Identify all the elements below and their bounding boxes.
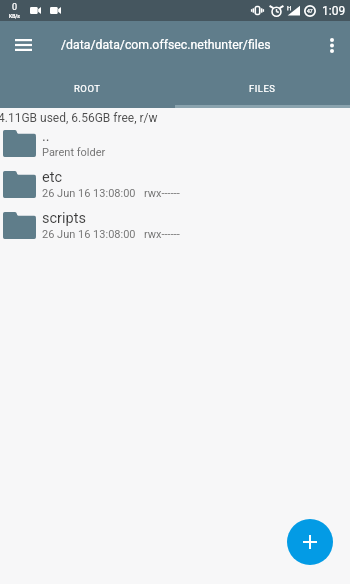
button[interactable]: Open navigation drawer: [0, 21, 47, 68]
staticText: 1:09: [322, 4, 346, 18]
button[interactable]: ROOT: [0, 68, 175, 108]
button[interactable]: etc: [0, 164, 350, 205]
button[interactable]: FILES: [175, 68, 350, 108]
staticText: H: [287, 4, 292, 11]
staticText: 26 Jun 16 13:08:00: [42, 228, 136, 241]
staticText: etc: [42, 169, 63, 186]
button[interactable]: Add: [287, 519, 333, 565]
staticText: scripts: [42, 210, 86, 227]
staticText: 26 Jun 16 13:08:00: [42, 187, 136, 200]
button[interactable]: ..: [0, 123, 350, 164]
button[interactable]: scripts: [0, 205, 350, 246]
staticText: ..: [42, 128, 50, 145]
button[interactable]: More options: [314, 27, 350, 63]
staticText: KB/s: [9, 13, 20, 19]
staticText: Parent folder: [42, 146, 106, 159]
staticText: ROOT: [74, 83, 101, 94]
staticText: /data/data/com.offsec.nethunter/files: [61, 38, 314, 52]
staticText: rwx------: [144, 187, 180, 200]
staticText: rwx------: [144, 228, 180, 241]
staticText: 4.11GB used, 6.56GB free, r/w: [0, 111, 158, 125]
staticText: 0: [12, 2, 18, 13]
staticText: FILES: [249, 83, 276, 94]
staticText: 47: [307, 8, 313, 14]
